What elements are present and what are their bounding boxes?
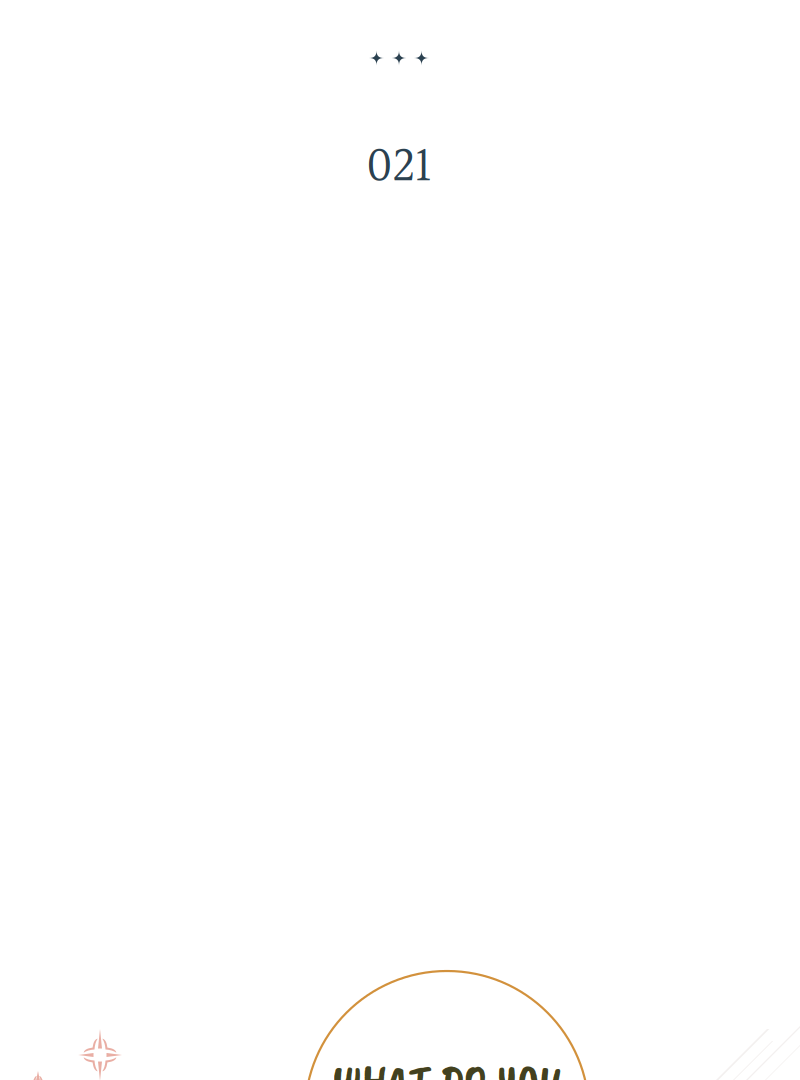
button[interactable]: WHAT DO YOU (305, 971, 589, 1080)
staticText: 021 (366, 127, 431, 207)
staticText: WHAT DO YOU (332, 1052, 562, 1080)
